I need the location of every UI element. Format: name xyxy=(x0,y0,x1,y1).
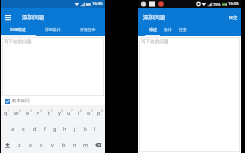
button[interactable]: r xyxy=(34,105,45,121)
staticText: 4 xyxy=(40,109,42,113)
staticText: z xyxy=(18,141,21,149)
staticText: 问题描述 xyxy=(10,27,26,32)
staticText: e xyxy=(26,109,30,117)
staticText: 9 xyxy=(91,109,93,113)
button[interactable]: d xyxy=(29,121,40,137)
button[interactable]: a xyxy=(7,121,18,137)
staticText: l xyxy=(94,125,96,133)
button[interactable]: v xyxy=(47,137,58,153)
button[interactable]: 开发任务 xyxy=(70,26,105,33)
staticText: 描述 xyxy=(149,27,157,32)
staticText: 开发任务 xyxy=(80,27,96,32)
button[interactable]: u xyxy=(65,105,75,121)
staticText: s xyxy=(22,125,25,133)
button[interactable]: g xyxy=(50,121,60,137)
button[interactable]: Shift xyxy=(1,137,14,153)
staticText: 设计 xyxy=(164,27,172,32)
button[interactable]: e xyxy=(23,105,34,121)
staticText: x xyxy=(29,141,32,149)
button[interactable]: 提交 xyxy=(228,13,239,22)
button[interactable]: h xyxy=(60,121,70,137)
button[interactable]: c xyxy=(36,137,47,153)
staticText: g xyxy=(53,125,57,133)
staticText: q xyxy=(4,109,8,117)
button[interactable]: s xyxy=(18,121,29,137)
staticText: 写下你的问题 xyxy=(4,39,32,45)
staticText: 写下你的问题 xyxy=(141,39,169,45)
button[interactable]: z xyxy=(14,137,25,153)
staticText: 16:55 xyxy=(92,1,103,7)
staticText: p xyxy=(97,109,101,117)
staticText: i xyxy=(78,109,80,117)
staticText: 75% xyxy=(213,2,221,7)
staticText: 1 xyxy=(8,109,10,113)
staticText: a xyxy=(11,125,15,133)
button[interactable]: 匿名提问 xyxy=(5,97,105,105)
staticText: f xyxy=(44,125,46,133)
staticText: u xyxy=(67,109,71,117)
button[interactable]: 设计 xyxy=(160,26,175,33)
button[interactable]: q xyxy=(1,105,12,121)
button[interactable]: Backspace xyxy=(91,137,105,153)
staticText: 0 xyxy=(101,109,103,113)
button[interactable]: t xyxy=(45,105,55,121)
staticText: 6 xyxy=(61,109,63,113)
staticText: 3 xyxy=(30,109,32,113)
button[interactable]: i xyxy=(75,105,85,121)
staticText: 5 xyxy=(51,109,53,113)
staticText: t xyxy=(48,109,51,117)
staticText: h xyxy=(63,125,67,133)
staticText: 详细设计 xyxy=(45,27,61,32)
button[interactable]: j xyxy=(70,121,80,137)
staticText: n xyxy=(73,141,77,149)
staticText: j xyxy=(74,125,76,133)
button[interactable]: p xyxy=(95,105,105,121)
button[interactable]: 详细设计 xyxy=(35,26,70,33)
button[interactable]: 任务 xyxy=(175,26,190,33)
button[interactable]: l xyxy=(90,121,100,137)
button[interactable]: x xyxy=(25,137,36,153)
button[interactable]: f xyxy=(40,121,50,137)
staticText: w xyxy=(14,109,19,117)
staticText: 添加问题 xyxy=(143,14,166,21)
button[interactable]: n xyxy=(69,137,80,153)
staticText: m xyxy=(83,141,89,149)
button[interactable]: 描述 xyxy=(145,26,160,33)
staticText: k xyxy=(84,125,87,133)
staticText: y xyxy=(58,109,61,117)
staticText: 匿名提问 xyxy=(12,98,30,104)
button[interactable]: b xyxy=(58,137,69,153)
staticText: v xyxy=(51,141,54,149)
button[interactable]: k xyxy=(80,121,90,137)
button[interactable]: Menu xyxy=(3,12,13,22)
button[interactable]: w xyxy=(12,105,23,121)
staticText: r xyxy=(37,109,40,117)
staticText: c xyxy=(40,141,43,149)
staticText: d xyxy=(33,125,37,133)
staticText: 2 xyxy=(19,109,21,113)
staticText: o xyxy=(87,109,91,117)
staticText: 7 xyxy=(71,109,73,113)
button[interactable]: 问题描述 xyxy=(1,26,35,33)
staticText: 16:55 xyxy=(228,1,239,7)
staticText: b xyxy=(62,141,66,149)
button[interactable]: m xyxy=(80,137,91,153)
button[interactable]: o xyxy=(85,105,95,121)
staticText: 8 xyxy=(80,109,82,113)
staticText: 添加问题 xyxy=(22,14,45,21)
button[interactable]: y xyxy=(55,105,65,121)
staticText: 提交 xyxy=(229,15,238,20)
staticText: 任务 xyxy=(179,27,187,32)
